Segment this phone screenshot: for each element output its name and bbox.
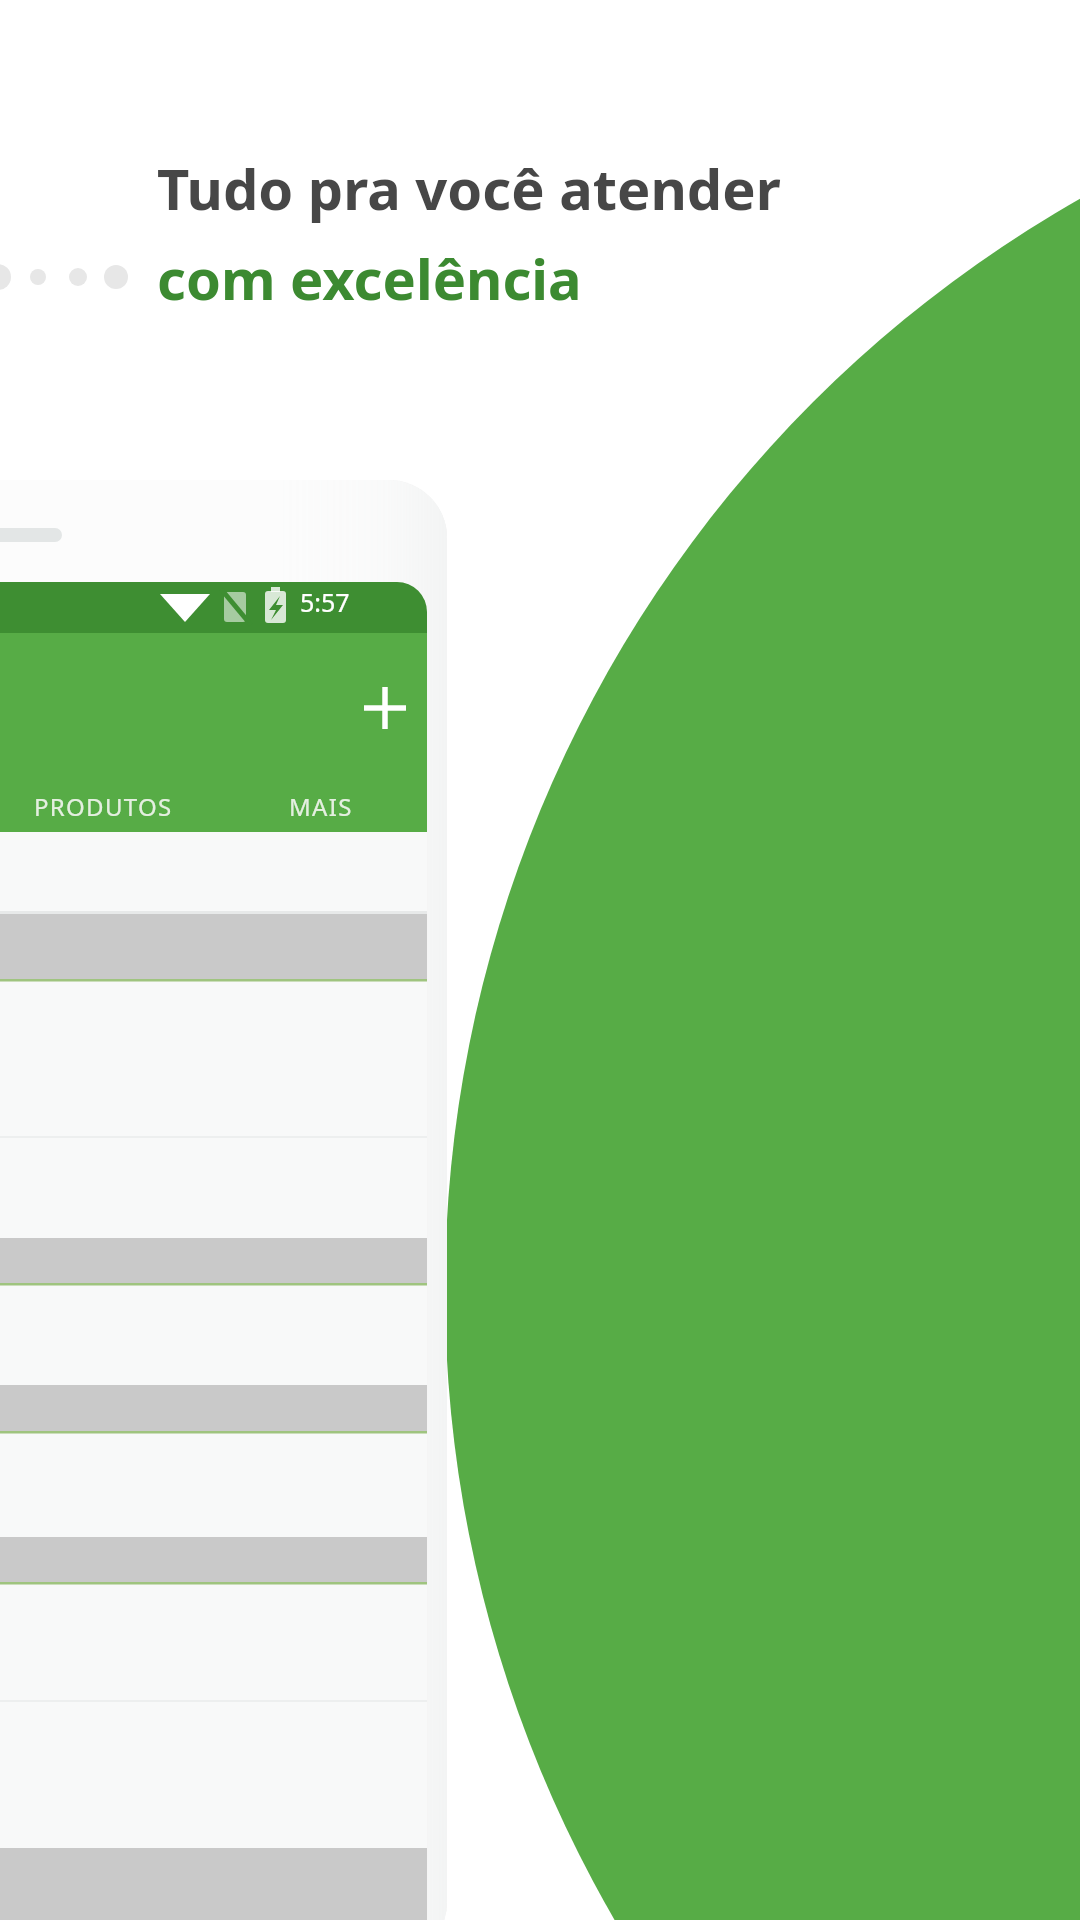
staticText: MAIS [289,790,353,823]
staticText: 5:57 [300,585,350,619]
staticText: PRODUTOS [34,790,173,823]
staticText: Tudo pra você atender [157,150,781,226]
button[interactable]: PRODUTOS [34,790,173,823]
button[interactable]: Adicionar [340,663,430,753]
button[interactable]: MAIS [289,790,353,823]
staticText: com excelência [157,240,582,316]
